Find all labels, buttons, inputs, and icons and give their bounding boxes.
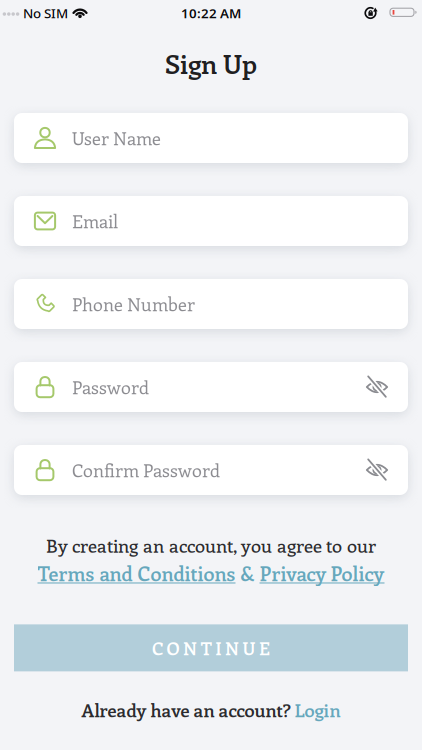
- staticText: Login: [294, 697, 340, 722]
- staticText: N: [183, 636, 197, 660]
- staticText: Privacy Policy: [259, 560, 384, 586]
- staticText: &: [235, 560, 259, 586]
- staticText: No SIM: [23, 4, 68, 22]
- button[interactable]: Login: [294, 697, 340, 722]
- staticText: T: [201, 636, 212, 660]
- button[interactable]: Email: [14, 196, 408, 246]
- button[interactable]: User Name: [14, 113, 408, 163]
- staticText: E: [259, 636, 270, 660]
- button[interactable]: Terms and Conditions: [37, 560, 235, 586]
- staticText: I: [215, 636, 221, 660]
- staticText: U: [242, 636, 255, 660]
- staticText: 10:22 AM: [181, 4, 241, 22]
- staticText: O: [166, 636, 179, 660]
- staticText: Email: [72, 209, 118, 233]
- button[interactable]: Confirm Password: [14, 445, 408, 495]
- button[interactable]: Show password: [366, 376, 388, 398]
- button[interactable]: Phone Number: [14, 279, 408, 329]
- button[interactable]: Show password: [366, 459, 388, 481]
- staticText: User Name: [72, 126, 161, 150]
- staticText: Phone Number: [72, 292, 195, 316]
- staticText: N: [225, 636, 239, 660]
- staticText: Terms and Conditions: [37, 560, 235, 586]
- staticText: Already have an account?: [81, 697, 294, 722]
- staticText: Confirm Password: [72, 458, 220, 482]
- button[interactable]: Privacy Policy: [259, 560, 384, 586]
- button[interactable]: C: [14, 624, 408, 671]
- staticText: By creating an account, you agree to our: [46, 533, 376, 558]
- staticText: Password: [72, 375, 149, 399]
- staticText: C: [152, 636, 163, 660]
- staticText: Sign Up: [165, 45, 257, 81]
- button[interactable]: Password: [14, 362, 408, 412]
